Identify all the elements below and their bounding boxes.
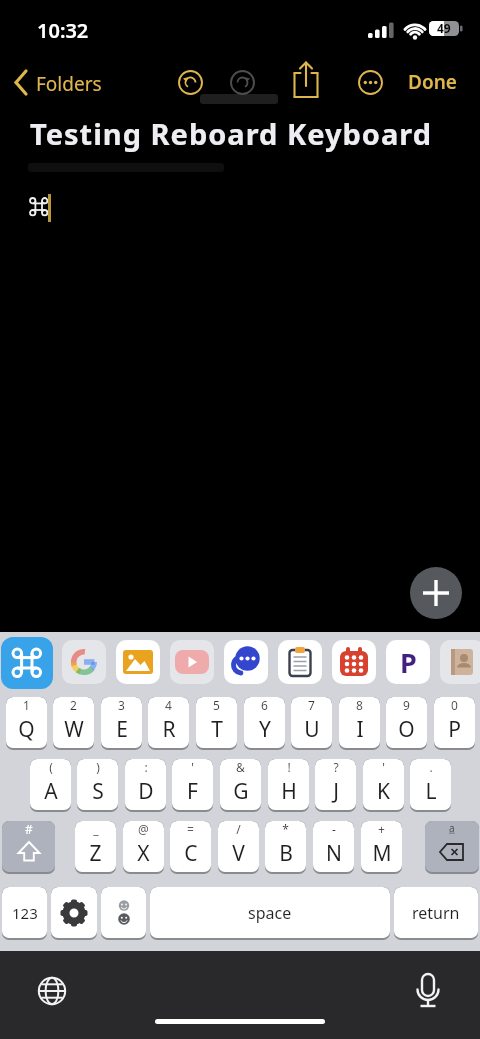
button[interactable]: a	[425, 821, 479, 874]
staticText: T	[211, 715, 223, 744]
button[interactable]: ?	[315, 759, 356, 812]
staticText: (	[49, 759, 53, 775]
staticText: _	[93, 821, 99, 837]
staticText: L	[425, 777, 437, 806]
staticText: V	[232, 839, 245, 868]
button[interactable]: 0	[434, 697, 475, 750]
staticText: R	[162, 715, 176, 744]
button[interactable]: 3	[101, 697, 142, 750]
button[interactable]	[229, 69, 256, 96]
button[interactable]	[62, 640, 106, 684]
button[interactable]: Done	[402, 64, 468, 98]
staticText: N	[326, 839, 342, 868]
staticText: P	[448, 715, 461, 744]
staticText: *	[282, 821, 289, 837]
button[interactable]: .	[410, 759, 451, 812]
button[interactable]: :	[125, 759, 166, 812]
staticText: U	[304, 715, 320, 744]
button[interactable]: 8	[339, 697, 380, 750]
button[interactable]	[116, 640, 160, 684]
staticText: B	[279, 839, 293, 868]
staticText: Z	[89, 839, 102, 868]
button[interactable]: Folders	[8, 62, 118, 102]
button[interactable]: 123	[2, 887, 47, 940]
staticText: X	[137, 839, 150, 868]
button[interactable]: '	[172, 759, 213, 812]
button[interactable]	[26, 965, 78, 1017]
button[interactable]: )	[77, 759, 118, 812]
staticText: 8	[356, 697, 363, 713]
button[interactable]: &	[220, 759, 261, 812]
button[interactable]: 1	[6, 697, 47, 750]
button[interactable]: 7	[291, 697, 332, 750]
staticText: 10:32	[37, 17, 89, 44]
button[interactable]: @	[123, 821, 164, 874]
button[interactable]: -	[313, 821, 354, 874]
button[interactable]	[170, 640, 214, 684]
staticText: .	[429, 759, 433, 775]
staticText: '	[191, 759, 194, 775]
staticText: W	[64, 715, 84, 744]
button[interactable]: /	[218, 821, 259, 874]
button[interactable]	[51, 887, 97, 940]
staticText: S	[92, 777, 104, 806]
button[interactable]: +	[361, 821, 402, 874]
button[interactable]	[288, 60, 324, 100]
staticText: Y	[259, 715, 271, 744]
staticText: Done	[408, 69, 457, 95]
staticText: 49	[437, 20, 451, 36]
staticText: Folders	[36, 71, 102, 97]
staticText: Q	[18, 715, 35, 744]
staticText: H	[281, 777, 297, 806]
staticText: !	[287, 759, 291, 775]
button[interactable]	[440, 640, 480, 684]
staticText: 123	[12, 903, 38, 923]
button[interactable]: P	[386, 640, 430, 684]
staticText: +	[378, 821, 385, 837]
staticText: Testing Reboard Keyboard	[30, 114, 433, 153]
staticText: D	[138, 777, 154, 806]
button[interactable]: '	[363, 759, 404, 812]
button[interactable]	[224, 640, 268, 684]
staticText: space	[248, 902, 292, 924]
button[interactable]: 5	[196, 697, 237, 750]
button[interactable]: space	[150, 887, 390, 940]
staticText: K	[377, 777, 390, 806]
staticText: O	[398, 715, 415, 744]
button[interactable]: 4	[148, 697, 189, 750]
button[interactable]: 2	[53, 697, 94, 750]
staticText: E	[116, 715, 128, 744]
button[interactable]: *	[265, 821, 306, 874]
button[interactable]	[332, 640, 376, 684]
button[interactable]	[1, 637, 53, 689]
staticText: C	[184, 839, 198, 868]
button[interactable]	[357, 69, 384, 96]
staticText: J	[333, 777, 339, 806]
staticText: =	[187, 821, 194, 837]
button[interactable]: !	[268, 759, 309, 812]
button[interactable]: _	[75, 821, 116, 874]
button[interactable]	[410, 567, 462, 619]
staticText: 4	[165, 697, 172, 713]
button[interactable]	[101, 887, 146, 940]
staticText: 1	[23, 697, 30, 713]
staticText: )	[96, 759, 100, 775]
staticText: /	[236, 821, 241, 837]
button[interactable]: 9	[386, 697, 427, 750]
button[interactable]: =	[170, 821, 211, 874]
staticText: #	[25, 821, 33, 837]
staticText: :	[144, 759, 148, 775]
button[interactable]: #	[2, 821, 55, 874]
button[interactable]: (	[30, 759, 71, 812]
staticText: I	[356, 715, 364, 744]
staticText: A	[44, 777, 58, 806]
staticText: 9	[403, 697, 410, 713]
staticText: a	[449, 821, 455, 835]
button[interactable]	[278, 640, 322, 684]
button[interactable]: 6	[244, 697, 285, 750]
button[interactable]: return	[394, 887, 478, 940]
staticText: 2	[70, 697, 77, 713]
button[interactable]	[177, 69, 204, 96]
staticText: P	[400, 644, 417, 681]
button[interactable]	[402, 965, 454, 1017]
